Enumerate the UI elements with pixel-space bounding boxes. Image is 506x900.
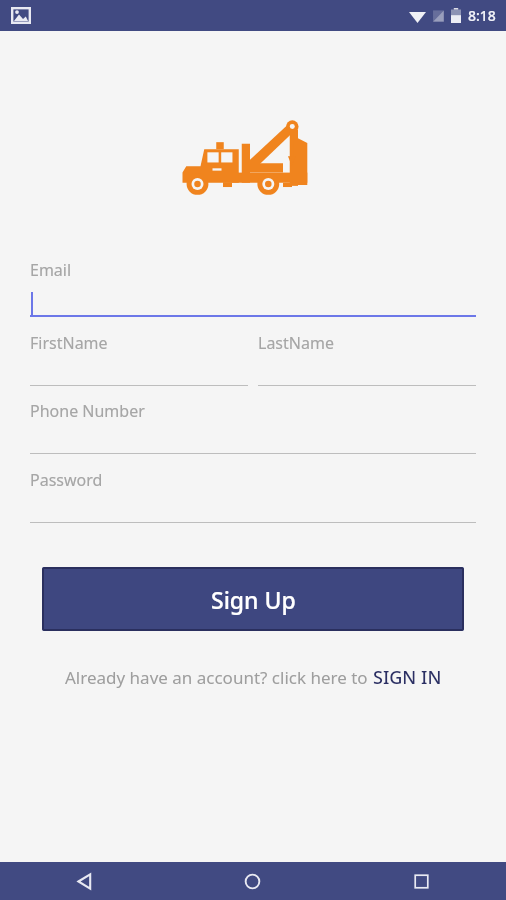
staticText: SIGN IN (373, 665, 442, 690)
staticText: 8:18 (468, 6, 496, 25)
staticText: Email (30, 259, 72, 281)
staticText: Already have an account? click here to (65, 666, 373, 689)
button[interactable]: Home (168, 862, 337, 900)
button[interactable]: Already have an account? click here to (0, 659, 506, 696)
staticText: FirstName (30, 332, 108, 354)
staticText: Password (30, 469, 103, 491)
staticText: Phone Number (30, 400, 145, 422)
staticText: Sign Up (211, 584, 296, 615)
staticText: LastName (258, 332, 334, 354)
button[interactable]: Recent apps (337, 862, 506, 900)
button[interactable]: Back (0, 862, 168, 900)
button[interactable]: Sign Up (42, 567, 464, 631)
